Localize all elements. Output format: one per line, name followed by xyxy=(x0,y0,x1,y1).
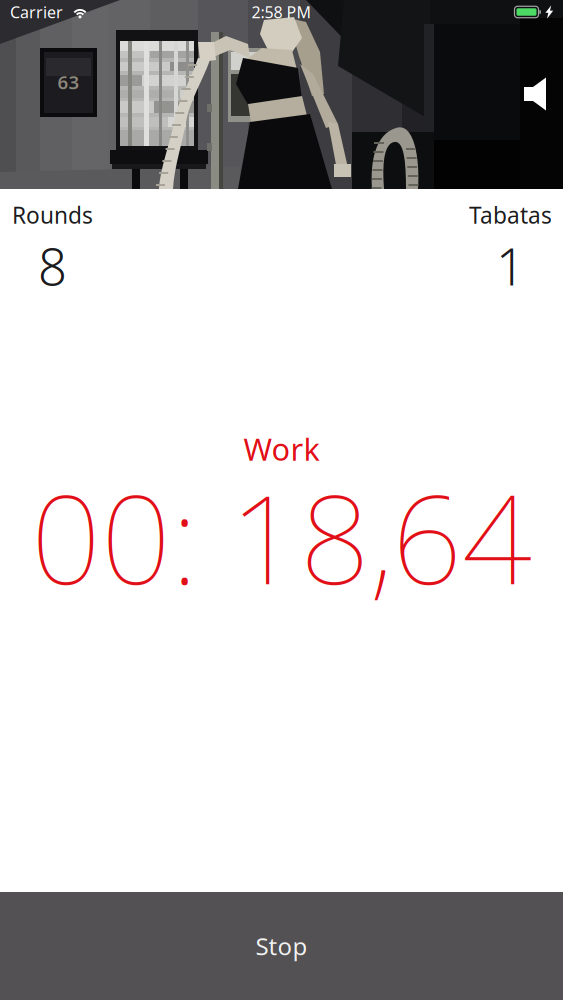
button[interactable]: Stop xyxy=(0,892,563,1000)
staticText: 8 xyxy=(38,232,67,299)
staticText: Stop xyxy=(255,930,307,962)
button[interactable]: Mute sound xyxy=(507,66,563,122)
staticText: Carrier xyxy=(10,1,63,23)
staticText: Rounds xyxy=(12,200,93,230)
staticText: 2:58 PM xyxy=(251,1,311,23)
staticText: 1 xyxy=(496,232,525,299)
staticText: 63 xyxy=(57,70,79,94)
staticText: Work xyxy=(243,428,319,469)
staticText: 00: 18,64 xyxy=(31,455,532,618)
staticText: Tabatas xyxy=(469,200,552,230)
